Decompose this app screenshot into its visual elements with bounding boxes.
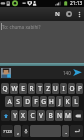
button[interactable]: Shift (1, 110, 10, 121)
staticText: J (59, 97, 61, 106)
button[interactable]: N (55, 110, 63, 121)
staticText: I (62, 84, 65, 93)
staticText: F (34, 97, 38, 106)
button[interactable]: X (19, 110, 27, 121)
staticText: 21:13 (70, 0, 83, 7)
button[interactable]: . (62, 125, 69, 137)
button[interactable]: G (40, 96, 47, 107)
button[interactable]: W (10, 83, 18, 94)
button[interactable]: L (72, 96, 79, 107)
button[interactable]: H (48, 96, 55, 107)
button[interactable]: Q (1, 83, 9, 94)
staticText: C (30, 111, 35, 120)
staticText: H (49, 97, 54, 106)
staticText: D (25, 97, 30, 106)
staticText: O (69, 84, 75, 93)
button[interactable]: V (37, 110, 45, 121)
staticText: N (55, 10, 60, 18)
button[interactable]: Z (44, 83, 51, 94)
button[interactable]: B (46, 110, 54, 121)
staticText: V (39, 111, 43, 120)
staticText: A (7, 97, 12, 106)
button[interactable]: E (19, 83, 27, 94)
button[interactable]: S (14, 96, 22, 107)
staticText: 140 (63, 70, 71, 76)
button[interactable]: Send (71, 66, 84, 79)
button[interactable]: P (76, 83, 83, 94)
button[interactable]: Contact photo (1, 68, 11, 78)
button[interactable]: O (68, 83, 75, 94)
staticText: B (48, 111, 53, 120)
staticText: U (53, 84, 58, 93)
staticText: N (57, 111, 62, 120)
button[interactable]: T (36, 83, 43, 94)
button[interactable]: Enter (70, 125, 83, 137)
button[interactable]: I (60, 83, 67, 94)
button[interactable]: More options (75, 7, 84, 21)
staticText: S (16, 97, 20, 106)
staticText: M (65, 111, 71, 120)
staticText: K (65, 97, 70, 106)
staticText: P (78, 84, 82, 93)
button[interactable]: , (14, 125, 21, 137)
button[interactable]: M (64, 110, 72, 121)
button[interactable]: Voice input (22, 125, 29, 137)
staticText: To: chuma xabihi? (2, 24, 41, 30)
staticText: R (29, 84, 34, 93)
button[interactable]: C (28, 110, 36, 121)
button[interactable]: Backspace (73, 110, 83, 121)
staticText: Y (13, 111, 17, 120)
button[interactable]: To: chuma xabihi? (0, 21, 84, 32)
button[interactable]: ?123 (1, 125, 13, 137)
staticText: E (21, 84, 25, 93)
staticText: Q (2, 84, 8, 93)
button[interactable]: Add recipient (51, 7, 63, 21)
staticText: , (17, 127, 19, 136)
staticText: G (41, 97, 46, 106)
staticText: L (74, 97, 78, 106)
staticText: T (38, 84, 42, 93)
button[interactable]: D (23, 96, 31, 107)
button[interactable]: Y (11, 110, 18, 121)
staticText: . (65, 127, 67, 136)
staticText: W (11, 84, 18, 93)
button[interactable]: A (5, 96, 13, 107)
button[interactable]: J (56, 96, 63, 107)
staticText: Z (46, 84, 50, 93)
button[interactable]: K (64, 96, 71, 107)
staticText: ?123 (3, 129, 12, 134)
button[interactable]: Attach (63, 7, 75, 21)
button[interactable]: U (52, 83, 59, 94)
button[interactable]: F (32, 96, 39, 107)
staticText: X (21, 111, 25, 120)
button[interactable]: R (28, 83, 35, 94)
